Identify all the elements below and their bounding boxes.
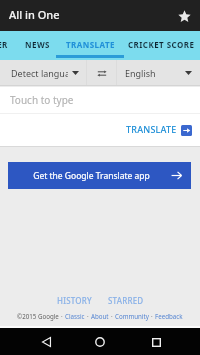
staticText: Get the Google Translate app [22, 170, 161, 182]
staticText: · [61, 312, 63, 320]
button[interactable]: Classic [65, 312, 85, 320]
staticText: All in One [9, 7, 60, 22]
staticText: TRANSLATE [66, 39, 115, 50]
staticText: ©2015 Google [17, 312, 59, 320]
button[interactable]: About [91, 312, 109, 320]
staticText: Classic [65, 312, 85, 320]
button[interactable]: Recent apps [144, 330, 168, 354]
staticText: English [125, 67, 156, 79]
button[interactable]: CRICKET SCORE [122, 31, 200, 58]
staticText: Feedback [155, 312, 183, 320]
button[interactable]: Touch to type [0, 87, 200, 113]
button[interactable]: NEWS [16, 31, 58, 58]
button[interactable]: Starred [171, 3, 197, 29]
button[interactable]: Home [88, 330, 112, 354]
staticText: TRANSLATE [126, 123, 177, 135]
button[interactable]: WEATHER [0, 31, 8, 58]
staticText: Community [115, 312, 149, 320]
button[interactable]: Community [115, 312, 149, 320]
staticText: HISTORY [57, 295, 92, 306]
button[interactable]: Swap languages [87, 60, 116, 86]
staticText: · [151, 312, 153, 320]
staticText: About [91, 312, 109, 320]
button[interactable]: TRANSLATE [56, 31, 124, 58]
staticText: STARRED [108, 295, 144, 306]
button[interactable]: Feedback [155, 312, 183, 320]
staticText: Touch to type [10, 93, 74, 107]
staticText: Detect language [11, 67, 68, 79]
staticText: · [87, 312, 89, 320]
staticText: WEATHER [0, 39, 8, 50]
button[interactable]: TRANSLATE [126, 121, 192, 137]
button[interactable]: Back [34, 330, 58, 354]
button[interactable]: HISTORY [55, 295, 94, 306]
button[interactable]: STARRED [106, 295, 146, 306]
staticText: NEWS [25, 39, 50, 50]
button[interactable]: Get the Google Translate app [8, 162, 191, 189]
staticText: · [111, 312, 113, 320]
button[interactable]: English [117, 60, 200, 86]
button[interactable]: Detect language [0, 60, 87, 86]
staticText: CRICKET SCORE [128, 39, 195, 50]
